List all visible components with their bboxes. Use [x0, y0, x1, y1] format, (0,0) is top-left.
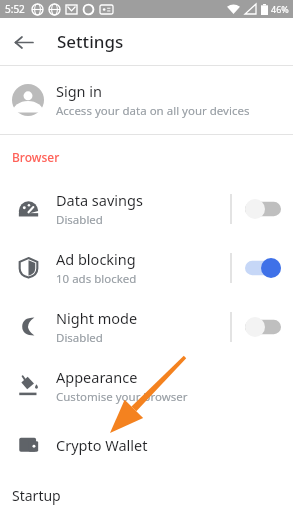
staticText: Ad blocking [56, 249, 136, 269]
staticText: 10 ads blocked [56, 271, 137, 287]
button[interactable]: Back [4, 23, 42, 61]
button[interactable]: Ad blocking [0, 238, 293, 297]
staticText: Settings [57, 30, 124, 53]
staticText: Customise your browser [56, 389, 188, 405]
button[interactable]: Data savings toggle [232, 179, 293, 238]
staticText: 46% [271, 3, 289, 15]
button[interactable]: Startup [12, 486, 293, 510]
staticText: Night mode [56, 308, 138, 328]
button[interactable]: Night mode toggle [232, 297, 293, 356]
button[interactable]: Night mode [0, 297, 293, 356]
button[interactable]: Crypto Wallet [0, 415, 293, 474]
staticText: Startup [12, 486, 61, 505]
staticText: Disabled [56, 212, 103, 228]
staticText: Browser [12, 149, 60, 165]
staticText: Crypto Wallet [56, 435, 148, 455]
button[interactable]: Sign in [0, 66, 293, 134]
button[interactable]: Appearance [0, 356, 293, 415]
staticText: 5:52 [5, 2, 25, 16]
button[interactable]: Ad blocking toggle [232, 238, 293, 297]
staticText: Data savings [56, 190, 143, 210]
staticText: Access your data on all your devices [56, 103, 250, 119]
staticText: Disabled [56, 330, 103, 346]
staticText: Appearance [56, 367, 138, 387]
button[interactable]: Data savings [0, 179, 293, 238]
staticText: Sign in [56, 81, 103, 101]
